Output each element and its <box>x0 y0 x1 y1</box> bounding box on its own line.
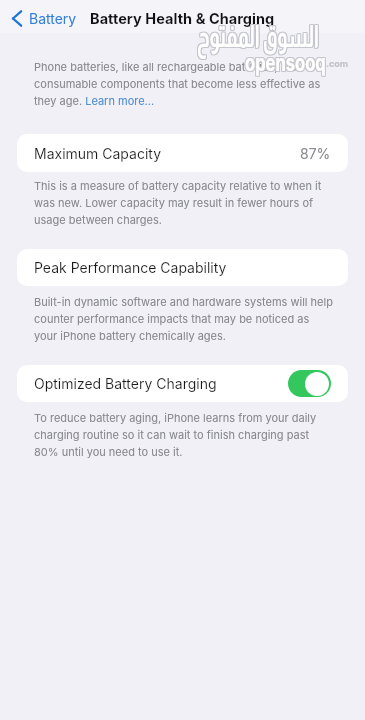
staticText: To reduce battery aging, iPhone learns f… <box>34 411 364 459</box>
staticText: opensooq <box>246 50 327 78</box>
staticText: السوق المفتوح <box>196 19 318 53</box>
staticText: .com <box>326 58 349 69</box>
staticText: opensooq <box>245 48 326 76</box>
staticText: opensooq <box>245 49 326 77</box>
button[interactable]: Battery <box>11 9 83 28</box>
staticText: السوق المفتوح <box>196 20 318 54</box>
staticText: السوق المفتوح <box>198 21 320 55</box>
staticText: opensooq <box>246 49 327 77</box>
staticText: opensooq <box>244 48 325 76</box>
staticText: Phone batteries, like all rechargeable b… <box>34 60 364 108</box>
staticText: 87% <box>300 145 331 162</box>
staticText: opensooq <box>244 50 325 78</box>
staticText: opensooq <box>246 48 327 76</box>
staticText: السوق المفتوح <box>198 20 320 54</box>
staticText: opensooq <box>244 49 325 77</box>
staticText: opensooq <box>245 50 326 78</box>
staticText: Optimized Battery Charging <box>34 375 217 392</box>
button[interactable]: Maximum Capacity <box>17 134 348 172</box>
staticText: Peak Performance Capability <box>34 259 227 276</box>
staticText: السوق المفتوح <box>196 21 318 55</box>
staticText: السوق المفتوح <box>198 19 320 53</box>
staticText: السوق المفتوح <box>197 20 319 54</box>
staticText: This is a measure of battery capacity re… <box>34 179 364 227</box>
staticText: Maximum Capacity <box>34 145 162 162</box>
staticText: Battery Health & Charging <box>90 10 275 28</box>
staticText: السوق المفتوح <box>197 21 319 55</box>
staticText: Built-in dynamic software and hardware s… <box>34 295 364 343</box>
staticText: Battery <box>29 10 77 27</box>
button[interactable]: Peak Performance Capability <box>17 249 348 286</box>
button[interactable]: Optimized Battery Charging, on <box>288 370 331 397</box>
staticText: السوق المفتوح <box>197 19 319 53</box>
